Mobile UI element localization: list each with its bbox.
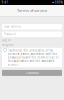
button[interactable]: Email address (2, 24, 62, 29)
button[interactable]: Log in (2, 38, 11, 42)
staticText: Password (4, 32, 16, 36)
staticText: Terms of service (17, 8, 47, 13)
staticText: Log in (2, 38, 11, 42)
staticText: 100% (54, 1, 62, 4)
staticText: Email address (4, 25, 21, 28)
button[interactable]: CONTINUE (2, 70, 62, 76)
button[interactable]: Password (2, 31, 62, 37)
staticText: 9:41 (1, 1, 8, 4)
staticText: Register (2, 43, 14, 46)
staticText: I authorise the processing of my persona… (8, 49, 59, 66)
button[interactable]: Register (2, 42, 14, 47)
staticText: ▴▾ (52, 1, 54, 4)
staticText: CONTINUE (25, 71, 38, 75)
